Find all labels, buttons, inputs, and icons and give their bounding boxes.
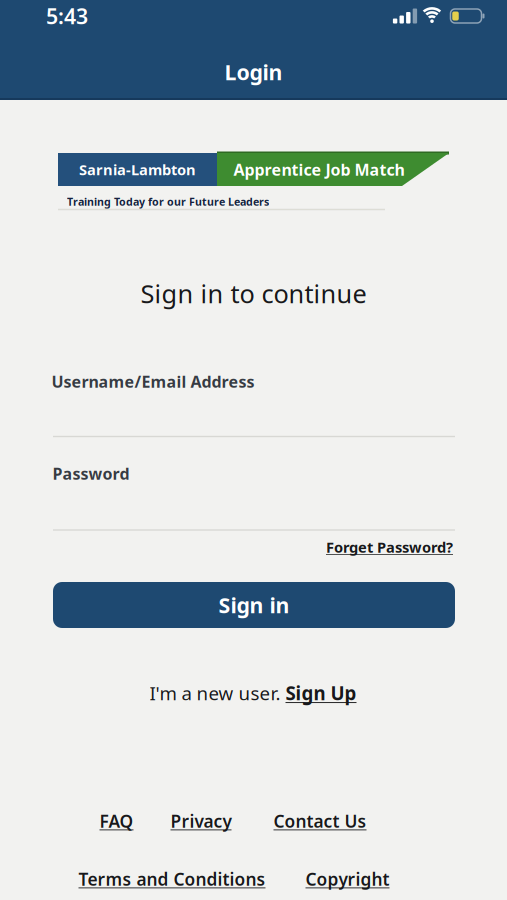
staticText: FAQ (99, 809, 133, 832)
staticText: 5:43 (46, 2, 88, 30)
staticText: Password (52, 463, 129, 484)
button[interactable]: FAQ (99, 809, 133, 832)
button[interactable]: Contact Us (273, 809, 366, 832)
button[interactable]: Forget Password? (326, 537, 453, 557)
staticText: I'm a new user. (149, 681, 285, 705)
staticText: Terms and Conditions (78, 867, 265, 890)
staticText: Login (224, 58, 282, 86)
staticText: Apprentice Job Match (233, 159, 404, 180)
button[interactable]: Copyright (305, 867, 389, 890)
button[interactable]: Terms and Conditions (78, 867, 265, 890)
button[interactable]: Privacy (170, 809, 231, 832)
staticText: Contact Us (273, 809, 366, 832)
staticText: Sign in (218, 591, 289, 619)
button[interactable]: Sign Up (285, 681, 356, 705)
staticText: Forget Password? (326, 537, 453, 557)
staticText: Privacy (170, 809, 231, 832)
button[interactable]: Sign in (53, 582, 455, 628)
staticText: Username/Email Address (51, 371, 254, 392)
staticText: Sarnia-Lambton (79, 160, 196, 179)
staticText: Sign in to continue (140, 277, 366, 310)
staticText: Copyright (305, 867, 389, 890)
staticText: Sign Up (285, 681, 356, 705)
staticText: Training Today for our Future Leaders (67, 194, 269, 209)
